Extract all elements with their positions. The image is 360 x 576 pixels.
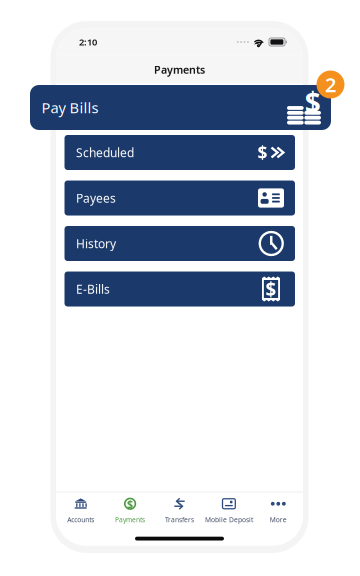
staticText: Payees xyxy=(76,190,116,206)
staticText: Transfers xyxy=(165,515,194,524)
button[interactable]: Scheduled xyxy=(64,135,295,170)
staticText: 2:10 xyxy=(79,36,97,48)
staticText: Pay Bills xyxy=(41,98,98,117)
staticText: 2 xyxy=(325,71,336,98)
staticText: $ xyxy=(265,277,276,301)
staticText: $ xyxy=(258,141,268,164)
button[interactable]: More xyxy=(254,492,303,526)
staticText: Mobile Deposit xyxy=(205,515,253,524)
button[interactable]: Payees xyxy=(64,180,295,215)
staticText: $ xyxy=(305,83,321,120)
button[interactable]: History xyxy=(64,226,295,261)
staticText: Accounts xyxy=(67,515,94,524)
staticText: More xyxy=(270,515,287,524)
staticText: E-Bills xyxy=(76,281,110,297)
button[interactable]: 2 notifications xyxy=(316,70,344,98)
staticText: $ xyxy=(127,497,133,511)
button[interactable]: E-Bills xyxy=(64,271,295,306)
staticText: Payments xyxy=(115,515,145,524)
button[interactable]: $ xyxy=(105,492,155,526)
button[interactable]: Mobile Deposit xyxy=(204,492,254,526)
staticText: Scheduled xyxy=(76,144,134,160)
button[interactable]: Accounts xyxy=(56,492,105,526)
staticText: Payments xyxy=(154,62,205,77)
button[interactable]: Transfers xyxy=(155,492,204,526)
button[interactable]: Pay Bills xyxy=(30,85,331,130)
staticText: History xyxy=(76,235,116,251)
